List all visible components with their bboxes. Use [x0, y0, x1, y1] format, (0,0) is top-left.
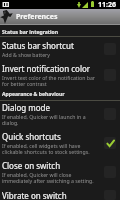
staticText: Invert notification color	[2, 63, 91, 74]
staticText: Status bar integration	[2, 29, 59, 36]
staticText: Add & show battery	[2, 51, 50, 58]
staticText: Invert text color of the notification ba…	[2, 74, 101, 87]
staticText: Appearance & behaviour	[2, 91, 65, 98]
button[interactable]: Invert notification color	[0, 61, 120, 88]
button[interactable]: Vibrate on switch	[0, 186, 120, 200]
staticText: Close on switch	[2, 160, 61, 171]
staticText: 11:26	[98, 0, 116, 9]
button[interactable]: Dialog mode	[0, 99, 120, 128]
staticText: Quick shortcuts	[2, 131, 61, 142]
staticText: If enabled, Quicker will close immediate…	[2, 171, 101, 184]
button[interactable]: Close on switch	[0, 157, 120, 186]
button[interactable]: Status bar shortcut	[0, 37, 120, 61]
button[interactable]: Checked	[104, 137, 116, 149]
staticText: If enabled, cell widgets will have click…	[2, 142, 101, 155]
staticText: Dialog mode	[2, 102, 51, 113]
staticText: Preferences	[16, 12, 58, 22]
staticText: Vibrate on switch	[2, 190, 67, 200]
staticText: Status bar shortcut	[2, 40, 74, 51]
button[interactable]: Quick shortcuts	[0, 128, 120, 157]
staticText: If enabled, Quicker will launch in a dia…	[2, 113, 101, 126]
